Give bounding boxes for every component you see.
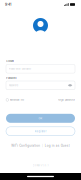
button[interactable]: Remember me [6,99,24,101]
staticText: Zonex V1.0.1 [32,164,48,167]
staticText: Password [9,84,18,87]
staticText: Log in as Guest [45,144,70,147]
staticText: Please enter username [9,67,31,70]
button[interactable]: Log in as Guest [45,144,70,147]
staticText: WiFi Configuration [11,144,40,147]
staticText: Register [34,130,46,133]
staticText: Account [6,60,14,62]
button[interactable]: WiFi Configuration [11,144,40,147]
staticText: Remember me [10,99,24,101]
button[interactable]: Forgot password? [58,99,75,101]
button[interactable]: Register [6,127,75,136]
staticText: Forgot password? [58,99,75,101]
staticText: Password [6,77,16,80]
staticText: | [42,144,43,147]
staticText: 9:41 [5,2,11,7]
button[interactable]: OK [6,114,75,123]
staticText: OK [38,117,42,120]
